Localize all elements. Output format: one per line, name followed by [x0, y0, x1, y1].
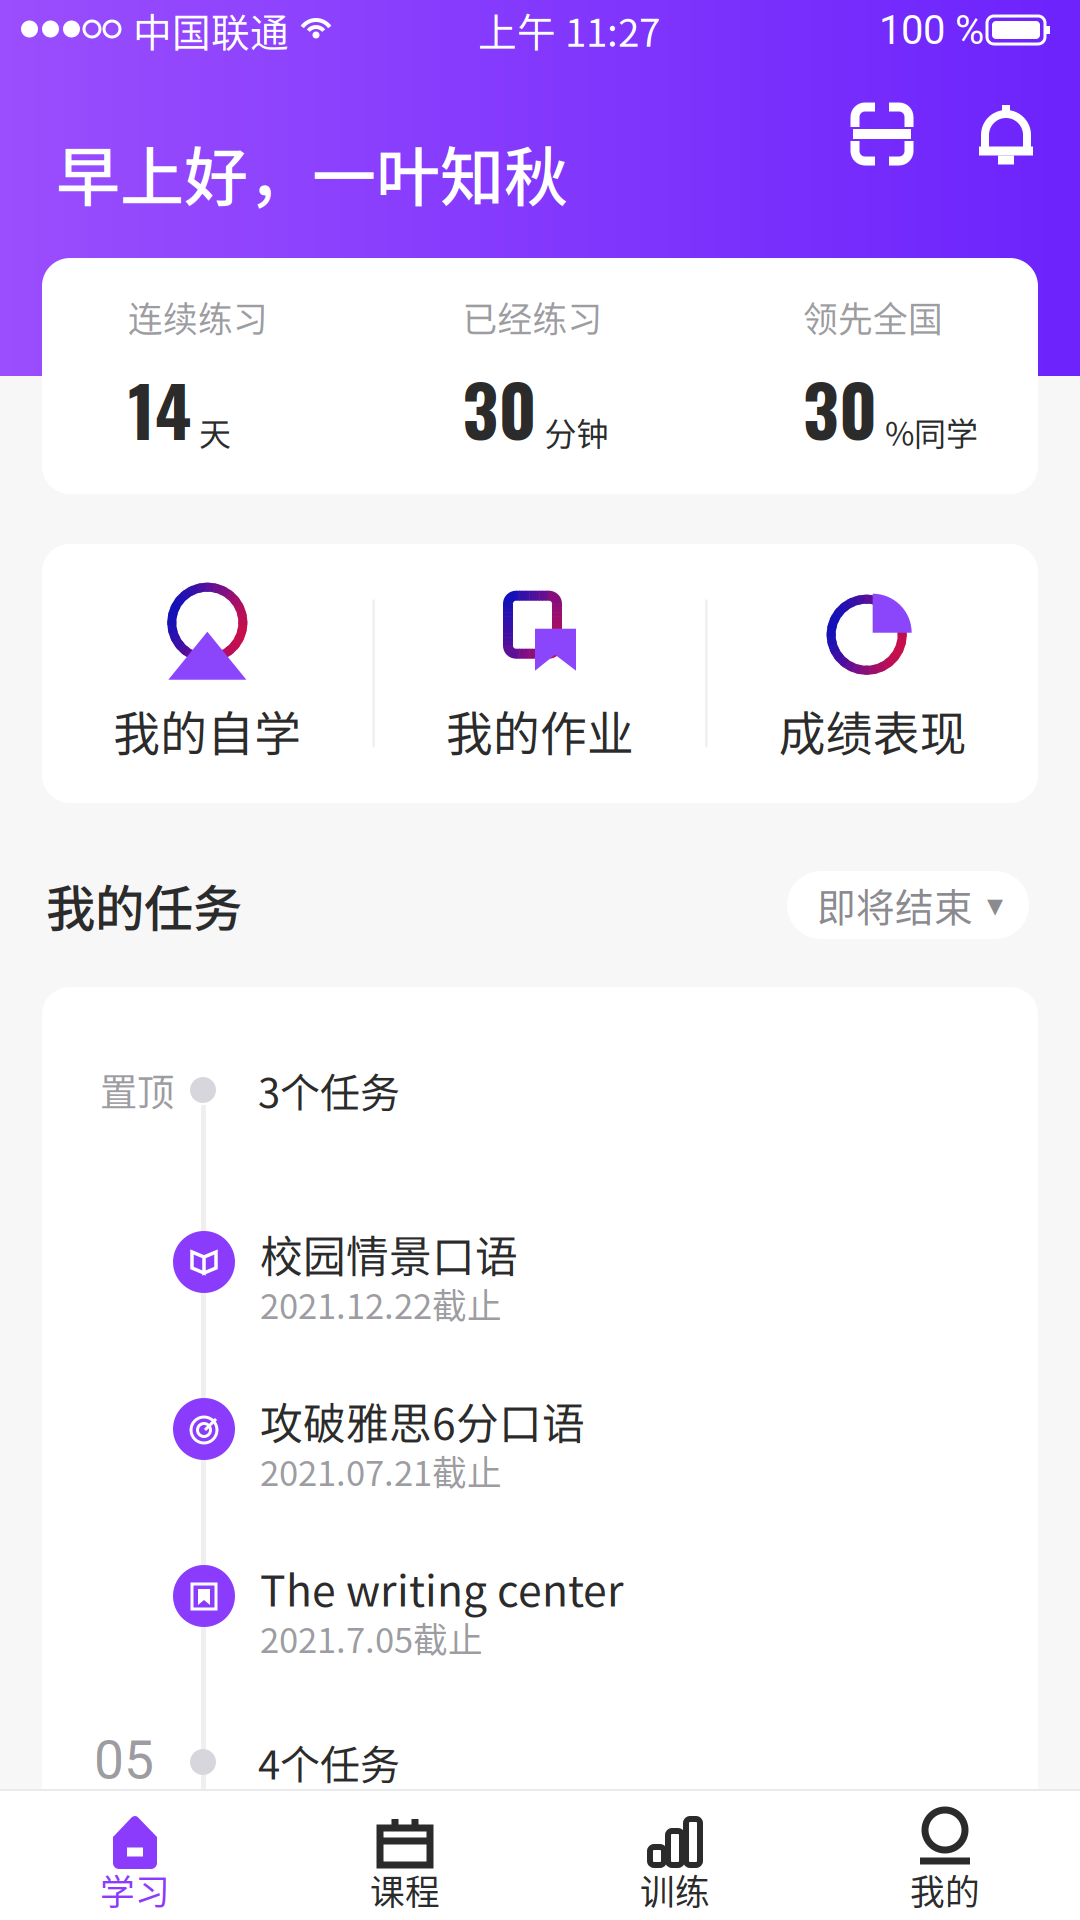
staticText: 我的自学 [113, 697, 301, 764]
button[interactable]: 攻破雅思6分口语 [173, 1398, 1080, 1460]
staticText: %同学 [885, 409, 978, 455]
staticText: 早上好，一叶知秋 [56, 126, 568, 219]
staticText: 攻破雅思6分口语 [260, 1390, 585, 1452]
staticText: 14 [128, 357, 191, 460]
button[interactable]: 成绩表现 [707, 583, 1038, 764]
button[interactable]: 我的作业 [375, 583, 705, 764]
button[interactable]: Notifications [976, 102, 1036, 166]
staticText: 2021.12.22截止 [260, 1279, 502, 1329]
staticText: 2021.07.21截止 [260, 1446, 502, 1496]
staticText: ▾ [987, 887, 1003, 923]
staticText: 课程 [370, 1865, 440, 1915]
button[interactable]: Scan [850, 102, 914, 166]
staticText: 2021.7.05截止 [260, 1613, 483, 1663]
staticText: 30 [462, 357, 536, 460]
button[interactable]: 即将结束 [787, 871, 1029, 939]
button[interactable]: 校园情景口语 [173, 1231, 1080, 1293]
staticText: 中国联通 [133, 2, 289, 58]
staticText: 4个任务 [258, 1733, 400, 1791]
staticText: 05 [94, 1729, 154, 1791]
staticText: 3个任务 [258, 1061, 400, 1119]
staticText: 置顶 [100, 1063, 174, 1117]
staticText: 2021 [94, 1791, 174, 1834]
button[interactable]: 学习 [0, 1811, 270, 1911]
staticText: 30 [803, 357, 877, 460]
button[interactable]: The writing center [173, 1565, 1080, 1627]
staticText: 连续练习 [128, 292, 268, 342]
button[interactable]: 我的 [810, 1811, 1080, 1911]
staticText: 已经练习 [462, 292, 602, 342]
staticText: 上午 11:27 [478, 2, 660, 58]
staticText: 天 [199, 409, 231, 455]
staticText: 我的 [910, 1865, 980, 1915]
staticText: 领先全国 [803, 292, 943, 342]
staticText: 我的任务 [46, 869, 242, 941]
staticText: 100 % [879, 7, 984, 54]
staticText: 我的作业 [446, 697, 634, 764]
button[interactable]: 我的自学 [42, 583, 373, 764]
staticText: 学习 [100, 1865, 170, 1915]
button[interactable]: 训练 [540, 1811, 810, 1911]
staticText: 成绩表现 [779, 697, 967, 764]
staticText: 即将结束 [817, 877, 973, 933]
staticText: 分钟 [544, 409, 608, 455]
button[interactable]: 课程 [270, 1811, 540, 1911]
staticText: The writing center [260, 1557, 624, 1619]
staticText: 训练 [640, 1865, 710, 1915]
staticText: 校园情景口语 [260, 1223, 518, 1285]
